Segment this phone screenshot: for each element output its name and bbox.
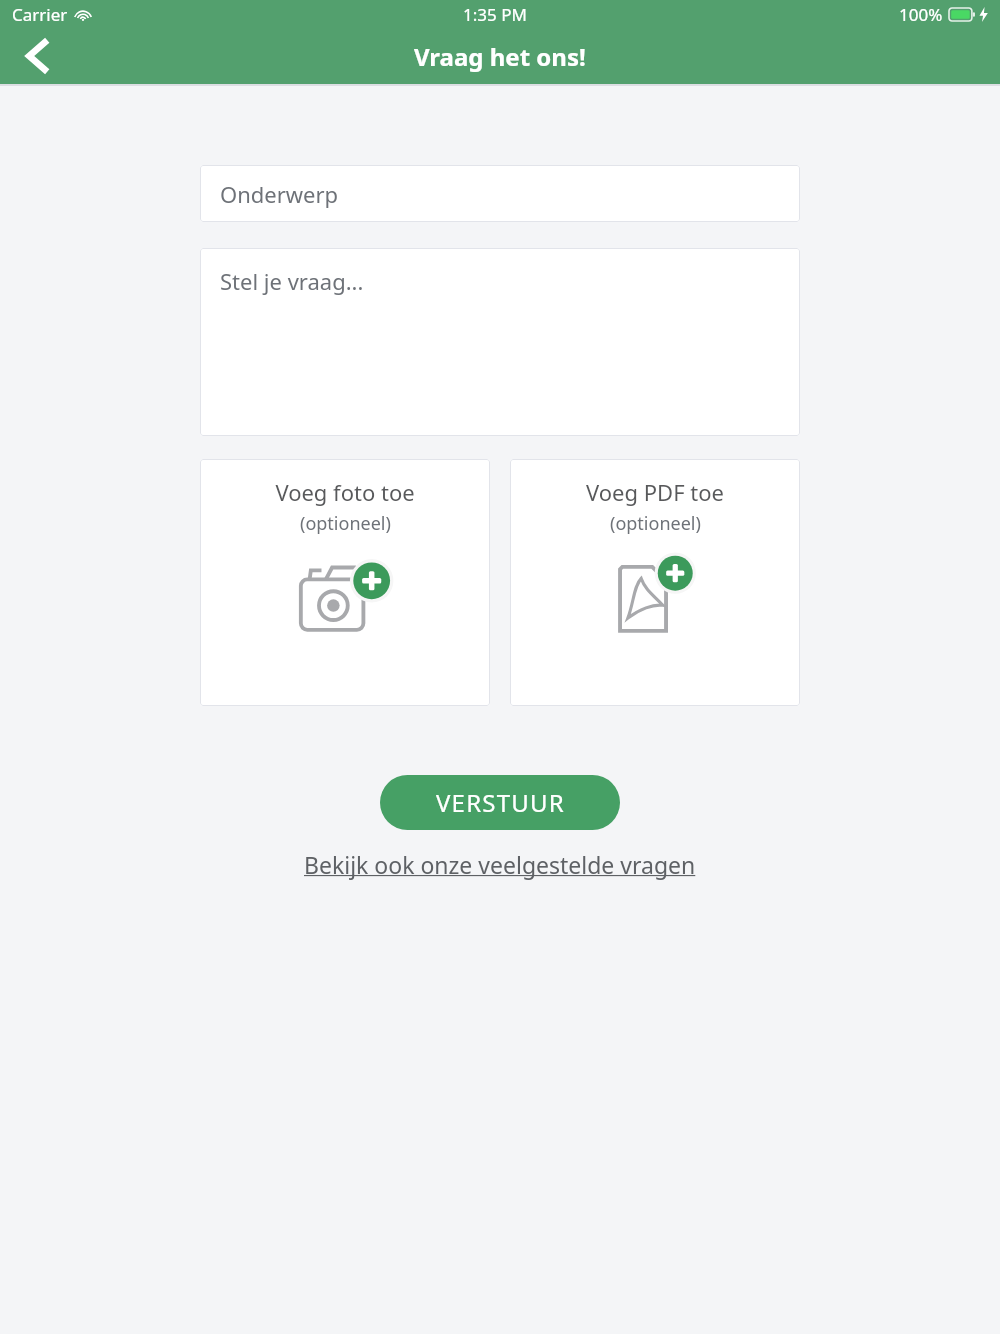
- staticText: Vraag het ons!: [414, 40, 586, 73]
- button[interactable]: Voeg foto toe: [200, 459, 490, 706]
- staticText: Stel je vraag...: [220, 266, 364, 296]
- staticText: Carrier: [12, 3, 68, 26]
- button[interactable]: Voeg PDF toe: [510, 459, 800, 706]
- staticText: Voeg PDF toe: [586, 477, 724, 507]
- button[interactable]: Onderwerp: [200, 165, 800, 222]
- staticText: VERSTUUR: [436, 786, 565, 819]
- staticText: Onderwerp: [220, 179, 339, 209]
- button[interactable]: Bekijk ook onze veelgestelde vragen: [298, 845, 702, 884]
- staticText: 1:35 PM: [463, 3, 527, 26]
- button[interactable]: VERSTUUR: [380, 775, 620, 830]
- staticText: (optioneel): [610, 511, 701, 536]
- button[interactable]: Back: [10, 28, 66, 84]
- staticText: 100%: [899, 3, 943, 26]
- staticText: Voeg foto toe: [275, 477, 415, 507]
- button[interactable]: Stel je vraag...: [200, 248, 800, 436]
- staticText: Bekijk ook onze veelgestelde vragen: [304, 849, 696, 880]
- staticText: (optioneel): [300, 511, 391, 536]
